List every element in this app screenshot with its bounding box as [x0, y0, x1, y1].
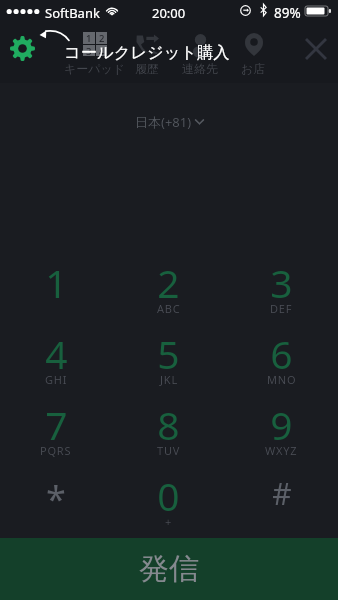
- button[interactable]: 1: [0, 249, 112, 320]
- button[interactable]: 9: [225, 391, 338, 462]
- staticText: +: [165, 514, 173, 529]
- button[interactable]: 2: [112, 249, 225, 320]
- button[interactable]: Close: [303, 36, 329, 62]
- staticText: 3: [270, 256, 293, 300]
- staticText: PQRS: [40, 443, 72, 458]
- staticText: ABC: [157, 301, 181, 316]
- staticText: DEF: [270, 301, 293, 316]
- staticText: お店: [241, 61, 266, 76]
- staticText: 5: [157, 327, 180, 371]
- staticText: 8: [157, 398, 180, 442]
- button[interactable]: 6: [225, 320, 338, 391]
- button[interactable]: 履歴: [112, 28, 182, 76]
- staticText: GHI: [45, 372, 68, 387]
- staticText: 履歴: [135, 61, 159, 76]
- staticText: 20:00: [152, 4, 186, 22]
- staticText: 89%: [274, 4, 301, 22]
- staticText: 9: [270, 398, 293, 442]
- button[interactable]: 発信: [0, 538, 338, 600]
- staticText: 7: [45, 398, 68, 442]
- button[interactable]: 0: [112, 462, 225, 533]
- staticText: 0: [157, 469, 180, 513]
- staticText: 2: [99, 32, 105, 44]
- button[interactable]: 5: [112, 320, 225, 391]
- button[interactable]: #: [225, 462, 338, 533]
- button[interactable]: 1: [60, 28, 130, 76]
- button[interactable]: 3: [225, 249, 338, 320]
- staticText: MNO: [267, 372, 297, 387]
- staticText: 3: [86, 45, 92, 56]
- button[interactable]: Settings: [10, 36, 35, 61]
- button[interactable]: 7: [0, 391, 112, 462]
- staticText: 日本(+81): [135, 113, 192, 131]
- staticText: 連絡先: [182, 61, 218, 76]
- button[interactable]: *: [0, 462, 112, 533]
- staticText: 6: [270, 327, 293, 371]
- staticText: コールクレジット購入: [64, 42, 230, 63]
- staticText: WXYZ: [265, 443, 298, 458]
- staticText: 発信: [139, 550, 199, 588]
- button[interactable]: 8: [112, 391, 225, 462]
- staticText: *: [46, 474, 66, 518]
- button[interactable]: 4: [0, 320, 112, 391]
- button[interactable]: 日本(+81): [0, 112, 338, 132]
- staticText: 1: [86, 32, 92, 44]
- staticText: 4: [45, 327, 68, 371]
- staticText: 4: [99, 45, 105, 56]
- staticText: #: [272, 473, 292, 514]
- staticText: JKL: [160, 372, 178, 387]
- staticText: 1: [45, 256, 68, 300]
- staticText: TUV: [157, 443, 181, 458]
- button[interactable]: お店: [218, 28, 288, 76]
- staticText: 2: [157, 256, 180, 300]
- staticText: キーパッド: [64, 61, 126, 76]
- staticText: SoftBank: [45, 4, 100, 22]
- button[interactable]: 連絡先: [165, 28, 235, 76]
